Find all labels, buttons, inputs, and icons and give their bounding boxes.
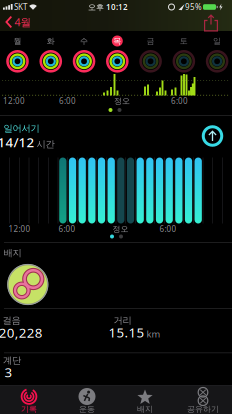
staticText: 배지 bbox=[3, 247, 21, 259]
staticText: 월 bbox=[13, 36, 21, 46]
staticText: 20,228 bbox=[0, 324, 43, 341]
button[interactable]: 기록 bbox=[10, 386, 48, 413]
staticText: 토 bbox=[180, 36, 188, 46]
staticText: 거리 bbox=[113, 315, 131, 326]
staticText: 15.15 bbox=[108, 323, 144, 341]
staticText: 금 bbox=[147, 36, 155, 46]
button[interactable]: 운동 bbox=[68, 386, 106, 413]
button[interactable]: 수 bbox=[68, 33, 100, 77]
staticText: 12:00 bbox=[8, 224, 30, 234]
staticText: 6:00 bbox=[59, 96, 76, 106]
staticText: 95% bbox=[185, 2, 202, 12]
button[interactable]: 배지 bbox=[126, 386, 164, 413]
staticText: 목 bbox=[113, 36, 121, 46]
staticText: 시간 bbox=[36, 138, 54, 150]
staticText: 오후 10:12 bbox=[88, 2, 128, 12]
staticText: 계단 bbox=[3, 355, 21, 366]
staticText: 6:00 bbox=[58, 224, 75, 234]
button[interactable]: 4월 bbox=[3, 14, 37, 30]
staticText: SKT bbox=[14, 2, 27, 12]
button[interactable]: 금 bbox=[135, 33, 167, 77]
button[interactable]: 화 bbox=[35, 33, 67, 77]
button[interactable]: 토 bbox=[168, 33, 200, 77]
button[interactable]: 월 bbox=[1, 33, 33, 77]
staticText: 일 bbox=[213, 36, 221, 46]
staticText: 12:00 bbox=[3, 96, 25, 106]
staticText: 수 bbox=[80, 36, 88, 46]
staticText: 정오 bbox=[112, 224, 128, 234]
staticText: km bbox=[146, 328, 160, 340]
button[interactable]: 공유 bbox=[204, 14, 218, 31]
staticText: 3 bbox=[4, 363, 12, 381]
staticText: 화 bbox=[47, 36, 55, 46]
staticText: 운동 bbox=[79, 404, 95, 414]
button[interactable]: 일 bbox=[201, 33, 232, 77]
staticText: 기록 bbox=[21, 404, 37, 414]
staticText: 공유하기 bbox=[187, 404, 219, 414]
staticText: 정오 bbox=[114, 96, 130, 106]
staticText: 6:00 bbox=[171, 96, 188, 106]
staticText: 6:00 bbox=[159, 224, 176, 234]
staticText: 걸음 bbox=[2, 315, 20, 326]
staticText: 일어서기 bbox=[3, 123, 39, 134]
button[interactable]: 공유하기 bbox=[184, 386, 222, 413]
staticText: 14/12 bbox=[0, 133, 34, 151]
staticText: 배지 bbox=[137, 404, 153, 414]
button[interactable]: 목 bbox=[101, 33, 133, 77]
button[interactable]: 배지 bbox=[7, 264, 48, 305]
staticText: 4월 bbox=[14, 15, 31, 29]
